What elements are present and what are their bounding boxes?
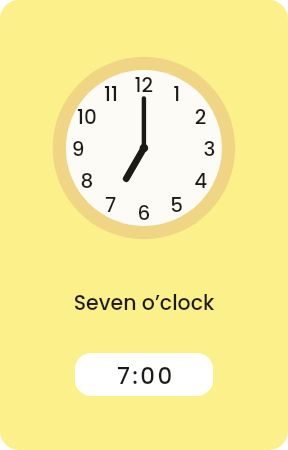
staticText: Seven o’clock bbox=[0, 288, 288, 317]
staticText: 7:00 bbox=[117, 360, 175, 392]
button[interactable]: 7:00 bbox=[75, 353, 213, 396]
